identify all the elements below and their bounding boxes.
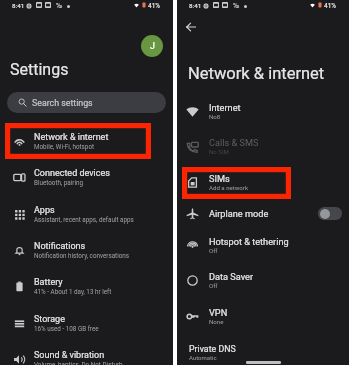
button[interactable]: Network & internet — [0, 123, 173, 159]
staticText: VPN — [209, 307, 228, 318]
button[interactable]: Apps — [0, 196, 173, 232]
button[interactable]: Back — [182, 18, 199, 35]
button[interactable]: Search settings — [7, 92, 166, 113]
staticText: Apps — [34, 205, 55, 216]
staticText: ‰ — [56, 2, 63, 10]
button[interactable]: Connected devices — [0, 159, 173, 195]
staticText: Battery — [34, 277, 63, 288]
staticText: Hotspot & tethering — [209, 236, 289, 247]
staticText: Data Saver — [209, 271, 254, 282]
staticText: 16% used - 108 GB free — [34, 325, 99, 332]
staticText: Connected devices — [34, 168, 110, 179]
button[interactable]: Airplane mode toggle — [318, 207, 342, 220]
staticText: Private DNS — [189, 344, 236, 354]
staticText: 8:41 — [189, 2, 202, 9]
staticText: Bluetooth, pairing — [34, 179, 83, 186]
staticText: Storage — [34, 314, 65, 325]
button[interactable]: Private DNS — [189, 344, 249, 361]
button[interactable]: Calls & SMS — [177, 128, 349, 164]
staticText: 41% - About 1 day, 13 hr left — [34, 288, 112, 295]
staticText: Volume, haptics, Do Not Disturb — [34, 361, 123, 365]
button[interactable]: Storage — [0, 305, 173, 341]
button[interactable]: Data Saver — [177, 262, 349, 298]
staticText: Automatic — [189, 354, 217, 361]
staticText: J — [150, 41, 155, 52]
button[interactable]: SIMs — [177, 164, 349, 200]
staticText: Mobile, Wi-Fi, hotspot — [34, 143, 95, 150]
staticText: SIMs — [209, 173, 230, 184]
staticText: Search settings — [32, 98, 93, 108]
button[interactable]: Notifications — [0, 232, 173, 268]
staticText: 8:41 — [12, 2, 25, 9]
staticText: Internet — [209, 102, 241, 113]
staticText: Assistant, recent apps, default apps — [34, 216, 134, 223]
staticText: No8 — [209, 113, 221, 120]
staticText: No SIM — [209, 148, 229, 155]
staticText: None — [209, 318, 224, 325]
button[interactable]: Sound & vibration — [0, 341, 173, 365]
staticText: Off — [209, 282, 218, 289]
button[interactable]: Internet — [177, 93, 349, 129]
staticText: Settings — [10, 60, 69, 79]
staticText: Off — [209, 247, 218, 254]
button[interactable]: Battery — [0, 268, 173, 304]
button[interactable]: Airplane mode — [177, 199, 349, 227]
staticText: Notifications — [34, 241, 86, 252]
staticText: Notification history, conversations — [34, 252, 130, 259]
staticText: Calls & SMS — [209, 137, 259, 148]
staticText: 41% — [324, 2, 336, 10]
button[interactable]: Account — [141, 35, 163, 57]
staticText: ‰ — [233, 2, 240, 10]
staticText: Sound & vibration — [34, 350, 105, 361]
staticText: Airplane mode — [209, 208, 269, 219]
staticText: Network & internet — [34, 132, 109, 143]
button[interactable]: Hotspot & tethering — [177, 227, 349, 263]
button[interactable]: VPN — [177, 298, 349, 334]
staticText: Network & internet — [188, 64, 325, 83]
staticText: Add a network — [209, 184, 248, 191]
staticText: 41% — [148, 2, 160, 10]
